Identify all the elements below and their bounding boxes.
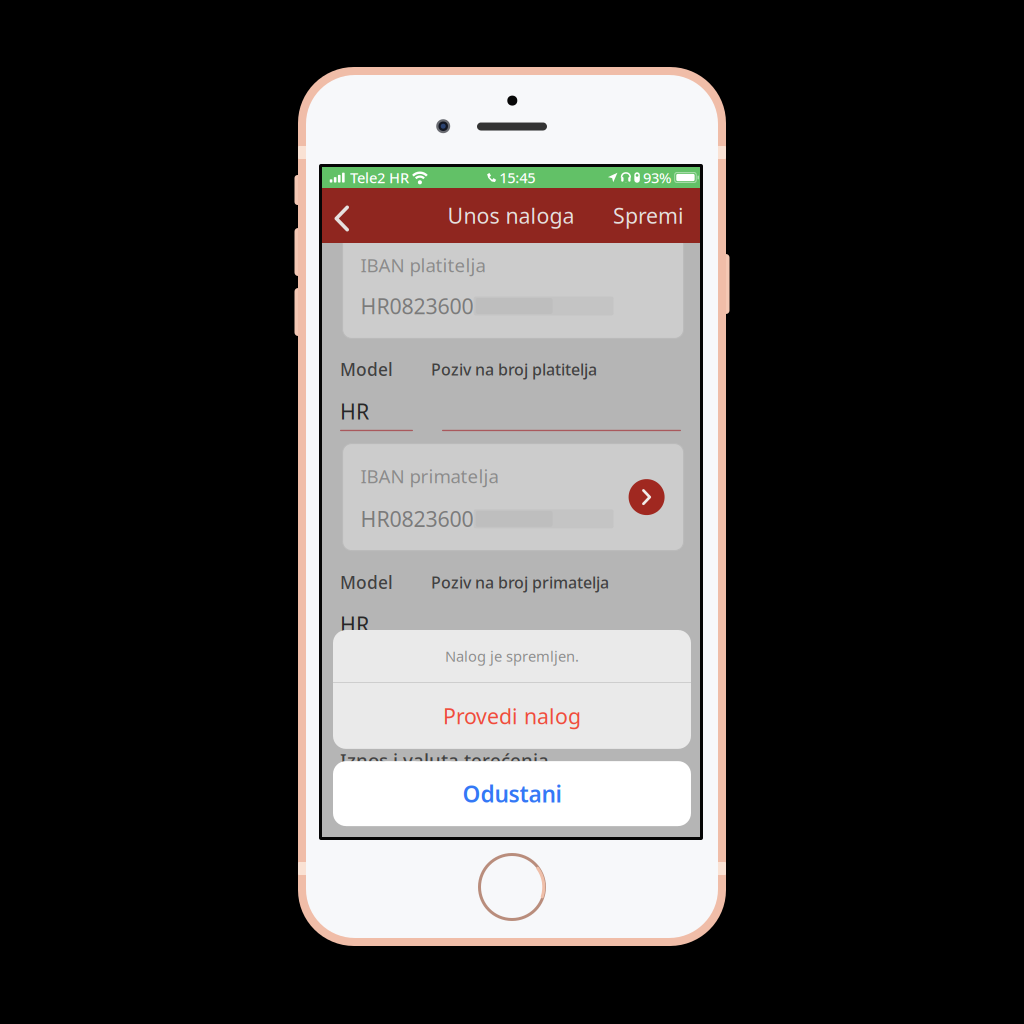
staticText: 15:45: [499, 168, 535, 187]
staticText: HR: [340, 610, 369, 638]
staticText: 93%: [643, 168, 671, 187]
staticText: HR0823600: [361, 505, 474, 533]
staticText: Nalog je spremljen.: [445, 646, 579, 666]
button[interactable]: Back: [322, 188, 360, 243]
staticText: Iznos i valuta terećenja: [340, 748, 549, 772]
staticText: Poziv na broj primatelja: [431, 572, 609, 593]
staticText: Iznos i valuta odobrenja: [340, 833, 557, 857]
staticText: Tele2 HR: [350, 168, 409, 187]
staticText: Odustani: [462, 778, 561, 809]
staticText: Model: [340, 358, 393, 381]
button[interactable]: Select recipient IBAN: [625, 475, 669, 519]
staticText: HR: [340, 397, 369, 425]
button[interactable]: Spremi: [607, 188, 690, 243]
staticText: Unos naloga: [447, 201, 574, 230]
button[interactable]: Odustani: [333, 761, 691, 826]
staticText: Provedi nalog: [443, 702, 581, 730]
button[interactable]: Provedi nalog: [333, 683, 691, 749]
staticText: HR0823600: [361, 292, 474, 320]
staticText: Spremi: [613, 201, 684, 230]
staticText: Model: [340, 571, 393, 594]
staticText: Poziv na broj platitelja: [431, 359, 597, 380]
staticText: IBAN platitelja: [361, 253, 486, 277]
staticText: IBAN primatelja: [361, 464, 499, 488]
